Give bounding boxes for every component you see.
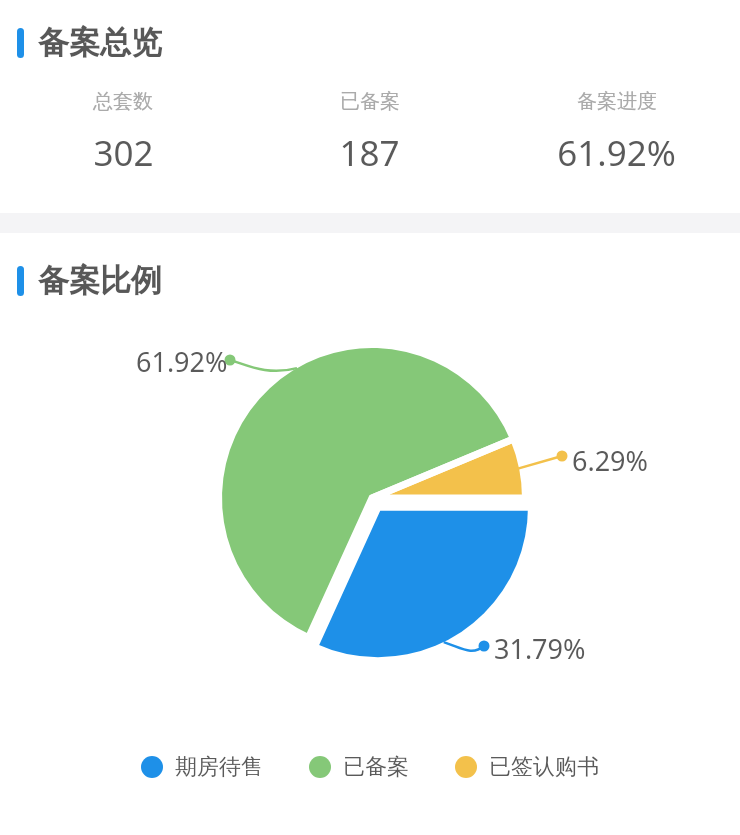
- staticText: 备案总览: [38, 23, 162, 62]
- button[interactable]: 期房待售: [141, 753, 263, 781]
- button[interactable]: 已签认购书: [455, 753, 599, 781]
- button[interactable]: 已备案: [246, 89, 493, 177]
- button[interactable]: 总套数: [0, 89, 246, 177]
- staticText: 总套数: [93, 89, 153, 114]
- button[interactable]: 备案进度: [493, 89, 740, 177]
- staticText: 备案进度: [577, 89, 657, 114]
- staticText: 已签认购书: [489, 753, 599, 781]
- staticText: 备案比例: [38, 261, 162, 300]
- staticText: 已备案: [343, 753, 409, 781]
- button[interactable]: 已备案: [309, 753, 409, 781]
- staticText: 已备案: [340, 89, 400, 114]
- staticText: 187: [339, 129, 400, 177]
- button[interactable]: 备案总览: [0, 23, 740, 62]
- staticText: 期房待售: [175, 753, 263, 781]
- staticText: 61.92%: [557, 129, 676, 177]
- staticText: 61.92%: [136, 343, 228, 380]
- button[interactable]: 备案比例: [0, 261, 740, 300]
- staticText: 31.79%: [494, 630, 586, 667]
- staticText: 302: [93, 129, 154, 177]
- staticText: 6.29%: [572, 442, 649, 479]
